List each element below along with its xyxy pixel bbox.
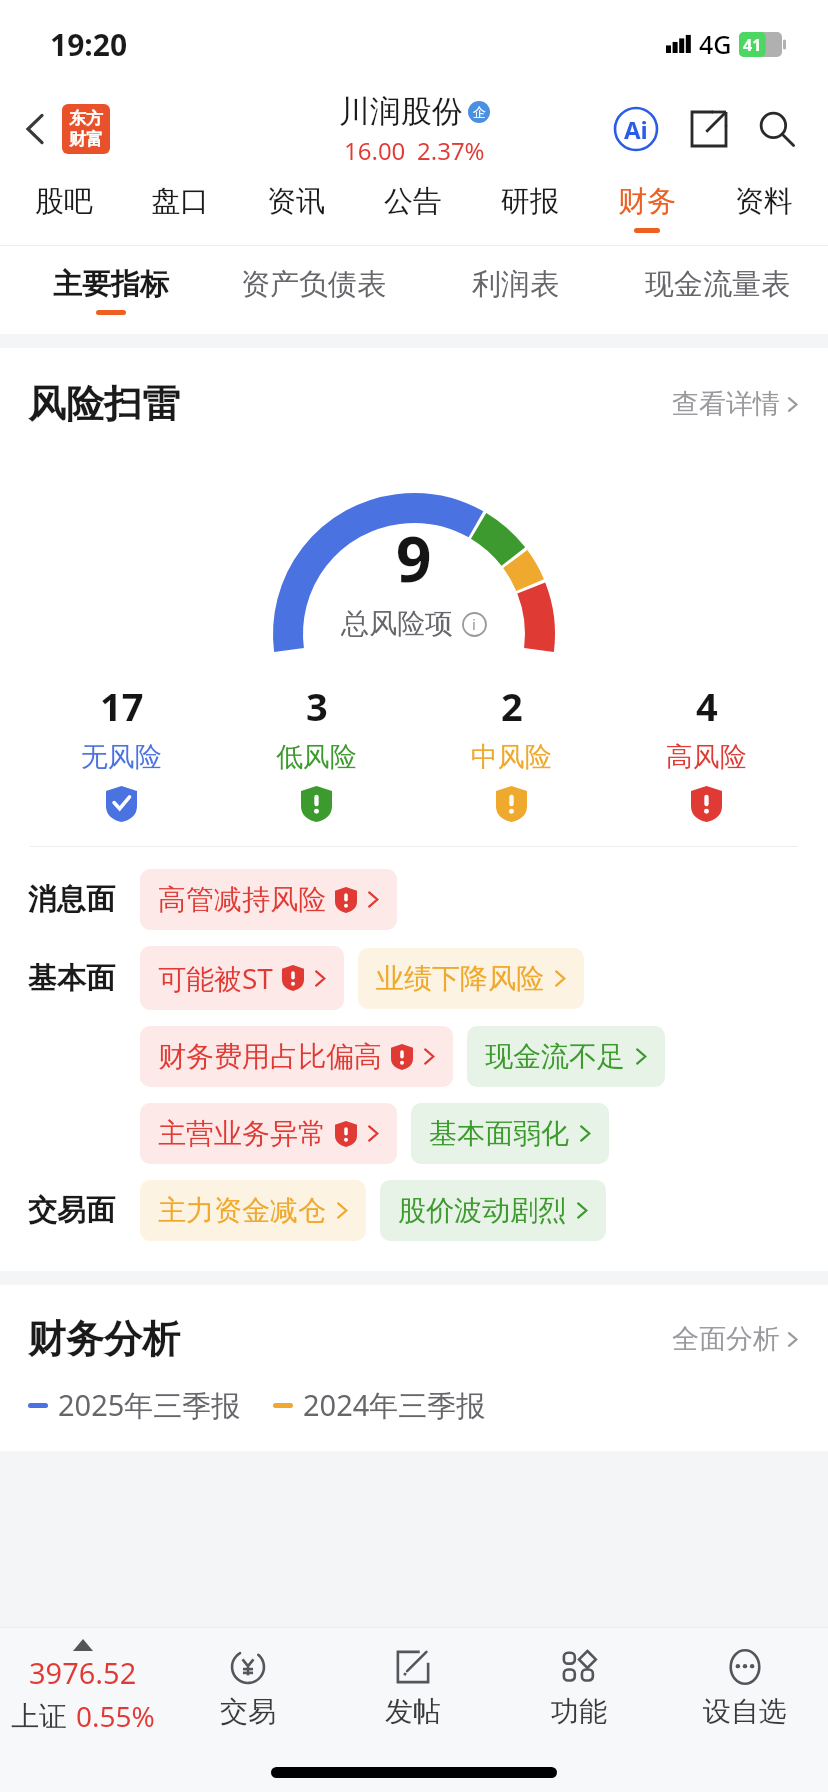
staticText: 3976.52 [29,1653,137,1692]
button[interactable]: AI assistant [610,103,662,155]
staticText: 全面分析 [672,1322,780,1356]
button[interactable]: 17 [24,680,219,822]
staticText: 企 [473,104,486,120]
button[interactable]: 2 [414,680,609,822]
staticText: 财务 [618,183,676,220]
staticText: 交易 [220,1694,276,1729]
staticText: 19:20 [50,24,128,65]
staticText: 设自选 [703,1694,787,1729]
staticText: 东方 [69,108,103,129]
button[interactable]: Back [18,98,116,160]
staticText: 资讯 [267,183,325,220]
staticText: 基本面 [28,960,115,997]
button[interactable]: 资产负债表 [212,246,414,334]
button[interactable]: 4 [609,680,804,822]
button[interactable]: 功能 [496,1628,662,1746]
staticText: 研报 [501,183,559,220]
staticText: 17 [100,680,144,732]
button[interactable]: Share [684,104,734,154]
staticText: 风险扫雷 [28,380,180,428]
staticText: 2024年三季报 [303,1385,486,1425]
staticText: 高管减持风险 [158,882,326,917]
staticText: 高风险 [666,740,747,774]
staticText: 4G [699,27,732,61]
staticText: 交易面 [28,1192,115,1229]
button[interactable]: 利润表 [414,246,616,334]
staticText: 现金流不足 [485,1039,625,1074]
staticText: 资料 [735,183,793,220]
button[interactable]: 发帖 [330,1628,496,1746]
button[interactable]: 资料 [705,170,822,246]
button[interactable]: 研报 [471,170,588,246]
button[interactable]: 现金流量表 [616,246,818,334]
button[interactable]: 公告 [354,170,471,246]
button[interactable]: 资讯 [238,170,354,246]
staticText: 现金流量表 [645,266,790,303]
staticText: 川润股份 [339,92,463,131]
staticText: i [472,614,476,634]
staticText: 可能被ST [158,959,273,997]
button[interactable]: 3 [219,680,414,822]
staticText: 41 [743,34,762,56]
staticText: 功能 [551,1694,607,1729]
button[interactable]: 查看详情 [666,381,804,427]
button[interactable]: 盘口 [122,170,238,246]
staticText: 利润表 [472,266,559,303]
staticText: 16.00 [344,134,406,167]
staticText: 中风险 [471,740,552,774]
button[interactable]: 交易 [165,1628,330,1746]
staticText: 消息面 [28,881,115,918]
button[interactable]: 财务费用占比偏高 [140,1026,453,1087]
button[interactable]: 基本面弱化 [411,1103,609,1164]
staticText: 2 [501,680,523,732]
staticText: 无风险 [81,740,162,774]
staticText: 股吧 [35,183,93,220]
button[interactable]: 主营业务异常 [140,1103,397,1164]
staticText: 财务分析 [28,1315,180,1363]
button[interactable]: 高管减持风险 [140,869,397,930]
staticText: 财务费用占比偏高 [158,1039,382,1074]
staticText: 基本面弱化 [429,1116,569,1151]
staticText: 低风险 [276,740,357,774]
button[interactable]: 股价波动剧烈 [380,1180,606,1241]
staticText: 查看详情 [672,387,780,421]
button[interactable]: 现金流不足 [467,1026,665,1087]
button[interactable]: Search [752,104,802,154]
staticText: 3 [306,680,328,732]
button[interactable]: 全面分析 [666,1316,804,1362]
staticText: 0.55% [76,1697,155,1735]
staticText: 财富 [69,129,103,150]
staticText: 总风险项 [341,606,453,641]
staticText: 公告 [384,183,442,220]
staticText: 发帖 [385,1694,441,1729]
button[interactable]: Info [461,611,487,637]
button[interactable]: 设自选 [662,1628,828,1746]
staticText: 资产负债表 [241,266,386,303]
staticText: 盘口 [151,183,209,220]
staticText: 2.37% [417,134,485,167]
staticText: 业绩下降风险 [376,961,544,996]
staticText: 主要指标 [53,266,169,303]
button[interactable]: 主力资金减仓 [140,1180,366,1241]
staticText: 上证 [11,1699,67,1734]
button[interactable]: 主要指标 [10,246,212,334]
button[interactable]: 股吧 [6,170,122,246]
button[interactable]: 业绩下降风险 [358,948,584,1009]
staticText: 主力资金减仓 [158,1193,326,1228]
staticText: 2025年三季报 [58,1385,241,1425]
button[interactable]: 可能被ST [140,946,344,1010]
staticText: 主营业务异常 [158,1116,326,1151]
staticText: Ai [624,113,648,146]
button[interactable]: 财务 [588,170,705,246]
other: Back [24,112,46,146]
button[interactable]: 3976.52 [0,1628,165,1746]
staticText: 股价波动剧烈 [398,1193,566,1228]
staticText: 9 [396,516,432,600]
staticText: 4 [696,680,718,732]
